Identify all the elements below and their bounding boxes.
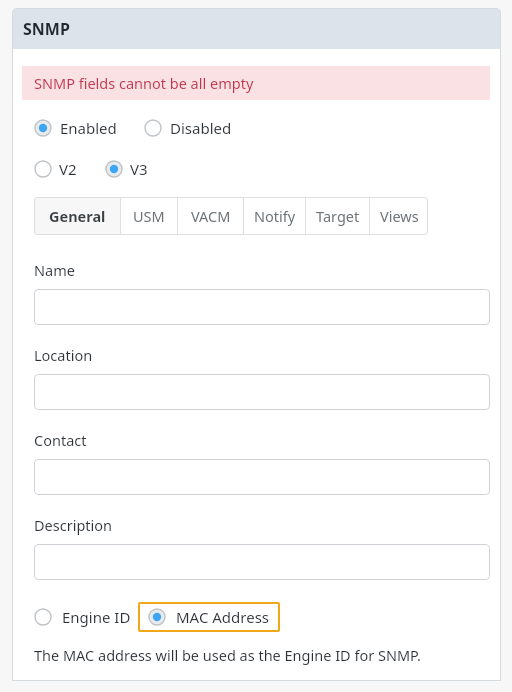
staticText: MAC Address: [176, 607, 270, 627]
staticText: Location: [34, 345, 93, 365]
button[interactable]: USM: [121, 197, 177, 234]
staticText: The MAC address will be used as the Engi…: [34, 645, 421, 665]
staticText: Target: [316, 206, 360, 226]
staticText: General: [49, 206, 106, 226]
staticText: V2: [59, 159, 77, 179]
button[interactable]: VACM: [178, 197, 243, 234]
button[interactable]: [34, 289, 490, 325]
staticText: Notify: [254, 206, 296, 226]
staticText: SNMP: [23, 18, 70, 40]
button[interactable]: MAC Address: [148, 607, 270, 627]
button[interactable]: Notify: [244, 197, 305, 234]
button[interactable]: General: [34, 197, 120, 234]
staticText: V3: [130, 159, 148, 179]
button[interactable]: [34, 544, 490, 580]
staticText: Description: [34, 515, 113, 535]
staticText: Engine ID: [62, 607, 131, 627]
staticText: Disabled: [170, 118, 232, 138]
staticText: Views: [380, 206, 419, 226]
staticText: SNMP fields cannot be all empty: [34, 73, 254, 93]
button[interactable]: Engine ID: [34, 607, 131, 627]
button[interactable]: V2: [34, 159, 77, 179]
button[interactable]: [34, 374, 490, 410]
staticText: Name: [34, 260, 75, 280]
button[interactable]: Disabled: [144, 118, 232, 138]
button[interactable]: Enabled: [34, 118, 117, 138]
button[interactable]: Target: [306, 197, 369, 234]
staticText: USM: [133, 206, 165, 226]
button[interactable]: [34, 459, 490, 495]
staticText: VACM: [191, 206, 231, 226]
staticText: Contact: [34, 430, 87, 450]
button[interactable]: Views: [370, 197, 428, 234]
button[interactable]: V3: [105, 159, 148, 179]
staticText: Enabled: [60, 118, 117, 138]
